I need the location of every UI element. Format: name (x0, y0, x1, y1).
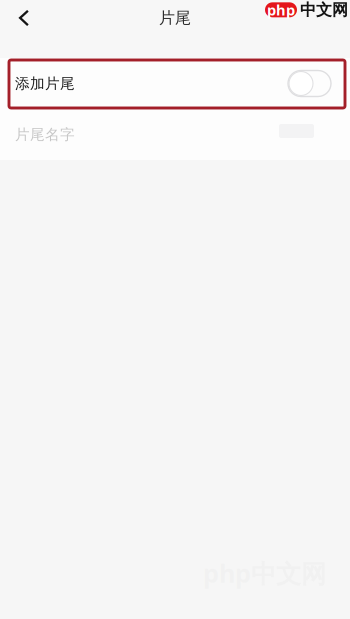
button[interactable]: Back (0, 5, 46, 31)
staticText: 添加片尾 (15, 74, 75, 92)
staticText: php (267, 0, 295, 20)
staticText: 中文网 (300, 0, 348, 20)
button[interactable]: 片尾名字 (0, 109, 350, 160)
staticText: 片尾 (159, 8, 191, 28)
button[interactable]: 添加片尾 (0, 58, 350, 109)
staticText: 片尾名字 (15, 125, 75, 143)
